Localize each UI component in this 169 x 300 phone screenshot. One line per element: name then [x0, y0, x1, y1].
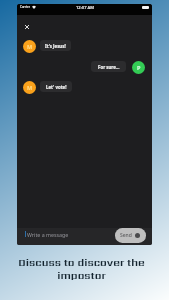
staticText: Send	[120, 232, 132, 239]
staticText: Let' vote!	[46, 84, 67, 90]
button[interactable]: Let' vote!	[40, 81, 72, 92]
button[interactable]: Send	[115, 228, 146, 243]
staticText: P	[137, 64, 141, 71]
button[interactable]: Close	[21, 21, 32, 32]
staticText: Discuss to discover the impostor	[18, 255, 145, 282]
staticText: Write a message	[27, 231, 69, 238]
staticText: For sure...	[98, 64, 120, 70]
staticText: M	[27, 43, 33, 50]
button[interactable]: It's Jesus!	[40, 40, 71, 51]
button[interactable]: For sure...	[91, 61, 126, 72]
staticText: 12:07 AM	[76, 5, 94, 11]
staticText: It's Jesus!	[45, 43, 66, 49]
staticText: Carrier	[20, 5, 30, 9]
staticText: M	[27, 84, 33, 91]
